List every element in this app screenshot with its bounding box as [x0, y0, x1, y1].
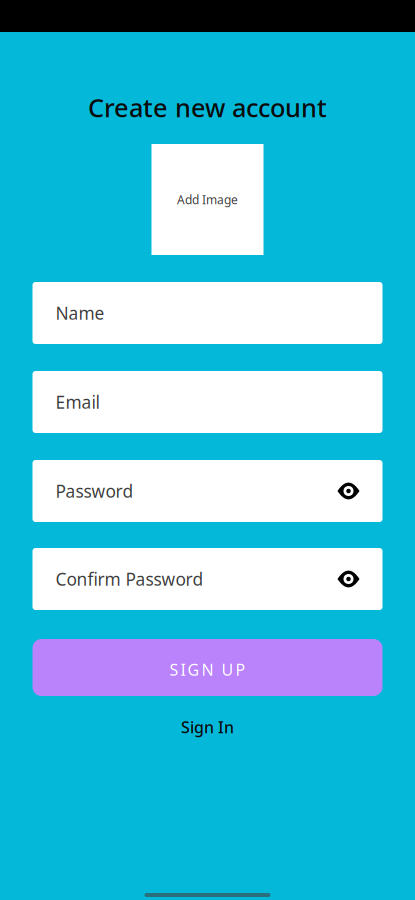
staticText: Confirm Password [55, 567, 203, 590]
staticText: Email [55, 390, 99, 413]
button[interactable]: S I G N U P [32, 639, 382, 696]
staticText: S I G N U P [169, 659, 245, 680]
staticText: Name [55, 301, 104, 324]
staticText: Sign In [181, 716, 234, 738]
staticText: Password [55, 479, 133, 502]
staticText: Add Image [177, 191, 238, 207]
button[interactable]: Add Image [151, 144, 263, 255]
button[interactable]: Email [32, 371, 382, 433]
button[interactable]: Password [32, 460, 382, 522]
staticText: Create new account [88, 91, 327, 124]
button[interactable]: Confirm Password [32, 548, 382, 610]
button[interactable]: Sign In [147, 716, 267, 738]
button[interactable]: Name [32, 282, 382, 344]
